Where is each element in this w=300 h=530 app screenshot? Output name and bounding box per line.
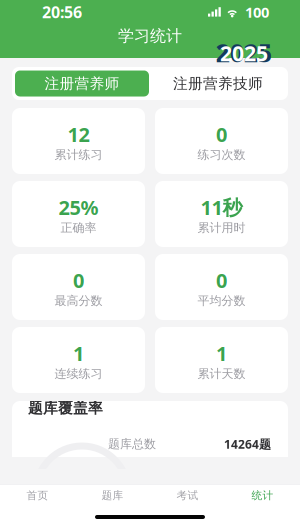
staticText: 考试 [176,489,198,502]
staticText: 累计练习 [54,147,102,162]
staticText: 0 [216,267,227,293]
staticText: 学习统计 [118,26,182,46]
staticText: 2025 [216,37,272,69]
staticText: 25% [58,194,98,220]
button[interactable]: 统计 [225,487,300,503]
staticText: 统计 [251,489,273,502]
staticText: 11秒 [200,194,242,220]
staticText: 题库 [101,489,123,502]
staticText: 注册营养师 [44,74,119,92]
button[interactable]: 题库 [75,487,150,503]
staticText: 正确率 [60,220,96,235]
staticText: 1 [216,340,227,366]
staticText: 累计用时 [197,220,245,235]
staticText: 累计天数 [197,366,245,381]
staticText: 12 [67,121,89,147]
staticText: 0 [216,121,227,147]
staticText: 练习次数 [197,147,245,162]
staticText: 100 [245,2,269,22]
staticText: 20:56 [42,1,82,23]
button[interactable]: 首页 [0,487,75,503]
staticText: 注册营养技师 [173,74,263,92]
staticText: 最高分数 [54,293,102,308]
button[interactable]: 注册营养师 [15,70,149,96]
staticText: 题库覆盖率 [28,399,103,417]
button[interactable]: 考试 [150,487,225,503]
staticText: 14264题 [224,436,271,452]
button[interactable]: 注册营养技师 [151,70,285,96]
staticText: 连续练习 [54,366,102,381]
staticText: 2025 [220,39,268,67]
staticText: 平均分数 [197,293,245,308]
staticText: 题库总数 [108,437,156,451]
staticText: 首页 [26,489,48,502]
staticText: 0 [73,267,84,293]
staticText: 1 [73,340,84,366]
